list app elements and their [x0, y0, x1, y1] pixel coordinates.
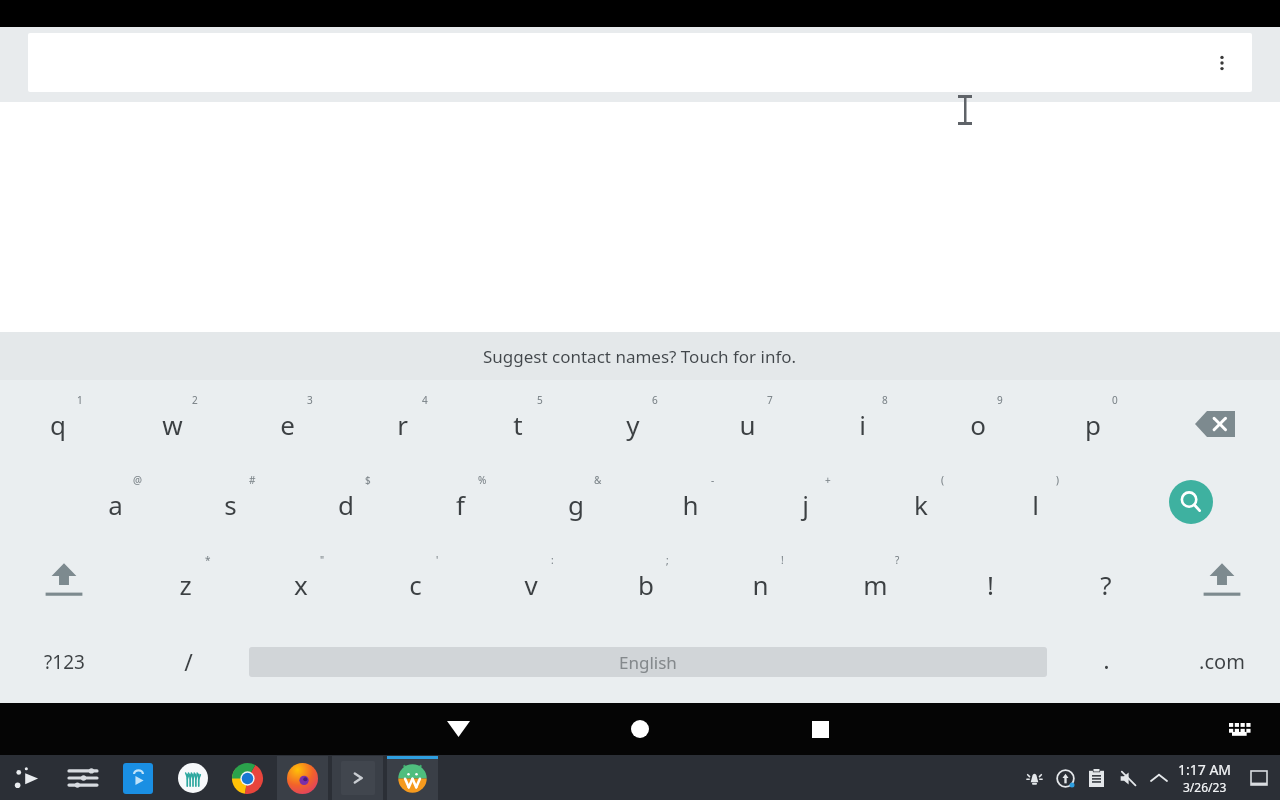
button[interactable]: t [460, 380, 575, 460]
button[interactable]: Terminal [332, 756, 383, 800]
button[interactable]: Recent apps [794, 703, 846, 755]
staticText: u [739, 407, 756, 442]
staticText: c [409, 567, 422, 602]
button[interactable]: Firefox [277, 756, 328, 800]
button[interactable]: b [588, 540, 703, 620]
staticText: i [859, 407, 866, 442]
staticText: o [970, 407, 986, 442]
staticText: / [184, 646, 193, 677]
button[interactable]: Software update [1050, 761, 1081, 795]
staticText: h [682, 487, 699, 522]
staticText: ( [941, 473, 944, 487]
button[interactable]: Chrome [222, 756, 273, 800]
button[interactable]: Settings [57, 756, 108, 800]
button[interactable]: App launcher [2, 756, 53, 800]
button[interactable]: r [345, 380, 460, 460]
button[interactable]: Backspace [1150, 380, 1280, 460]
staticText: b [638, 567, 654, 602]
staticText: q [50, 407, 66, 442]
button[interactable]: / [128, 620, 248, 703]
staticText: .com [1199, 648, 1245, 675]
staticText: 2 [192, 393, 198, 407]
button[interactable]: Clipboard [1081, 761, 1112, 795]
button[interactable]: w [115, 380, 230, 460]
button[interactable]: e [230, 380, 345, 460]
button[interactable]: j [748, 460, 863, 540]
staticText: 1 [77, 393, 83, 407]
staticText: * [205, 553, 211, 567]
staticText: l [1032, 487, 1039, 522]
button[interactable]: Switch keyboard [1220, 709, 1260, 749]
staticText: z [179, 567, 192, 602]
button[interactable]: f [403, 460, 518, 540]
button[interactable]: o [920, 380, 1035, 460]
staticText: d [338, 487, 354, 522]
staticText: English [619, 651, 677, 674]
button[interactable]: ! [933, 540, 1048, 620]
staticText: k [914, 487, 928, 522]
button[interactable]: Volume muted [1112, 761, 1143, 795]
button[interactable]: x [243, 540, 358, 620]
staticText: : [551, 553, 554, 567]
button[interactable]: c [358, 540, 473, 620]
staticText: . [1103, 643, 1110, 676]
button[interactable]: Suggest contact names? Touch for info. [0, 332, 1280, 380]
button[interactable]: q [0, 380, 115, 460]
button[interactable]: English [248, 620, 1048, 703]
button[interactable]: .com [1164, 620, 1280, 703]
button[interactable]: ? [1048, 540, 1163, 620]
button[interactable]: Search [1093, 460, 1280, 540]
button[interactable]: s [173, 460, 288, 540]
button[interactable]: Notifications sound [1019, 761, 1050, 795]
staticText: ! [781, 553, 784, 567]
button[interactable]: k [863, 460, 978, 540]
staticText: 6 [652, 393, 658, 407]
button[interactable]: y [575, 380, 690, 460]
staticText: f [456, 487, 465, 522]
button[interactable]: u [690, 380, 805, 460]
button[interactable]: Show hidden icons [1143, 761, 1174, 795]
button[interactable]: Android Studio [387, 756, 438, 800]
button[interactable]: v [473, 540, 588, 620]
staticText: $ [365, 473, 371, 487]
staticText: n [752, 567, 769, 602]
button[interactable]: l [978, 460, 1093, 540]
button[interactable]: d [288, 460, 403, 540]
button[interactable]: z [128, 540, 243, 620]
button[interactable]: More options [1200, 41, 1244, 85]
staticText: ! [987, 567, 994, 602]
staticText: # [249, 473, 256, 487]
staticText: r [397, 407, 408, 442]
button[interactable]: p [1035, 380, 1150, 460]
button[interactable]: i [805, 380, 920, 460]
button[interactable]: n [703, 540, 818, 620]
staticText: " [320, 553, 325, 567]
staticText: v [524, 567, 538, 602]
button[interactable]: Shift [0, 540, 128, 620]
button[interactable]: More options [28, 33, 1252, 92]
staticText: ' [436, 553, 439, 567]
staticText: @ [133, 473, 142, 487]
staticText: 8 [882, 393, 888, 407]
button[interactable]: g [518, 460, 633, 540]
button[interactable]: 1:17 AM [1178, 760, 1232, 795]
button[interactable]: m [818, 540, 933, 620]
staticText: ) [1056, 473, 1059, 487]
staticText: 9 [997, 393, 1003, 407]
staticText: - [711, 473, 715, 487]
staticText: & [594, 473, 602, 487]
staticText: w [162, 407, 183, 442]
staticText: j [802, 487, 809, 522]
staticText: a [108, 487, 123, 522]
button[interactable]: Play Store [112, 756, 163, 800]
button[interactable]: Files [167, 756, 218, 800]
button[interactable]: ?123 [0, 620, 128, 703]
button[interactable]: Hide keyboard [432, 703, 484, 755]
button[interactable]: a [58, 460, 173, 540]
button[interactable]: Notifications [1242, 761, 1276, 795]
button[interactable]: Home [614, 703, 666, 755]
button[interactable]: h [633, 460, 748, 540]
staticText: t [513, 407, 523, 442]
button[interactable]: Shift [1163, 540, 1280, 620]
button[interactable]: . [1048, 620, 1164, 703]
